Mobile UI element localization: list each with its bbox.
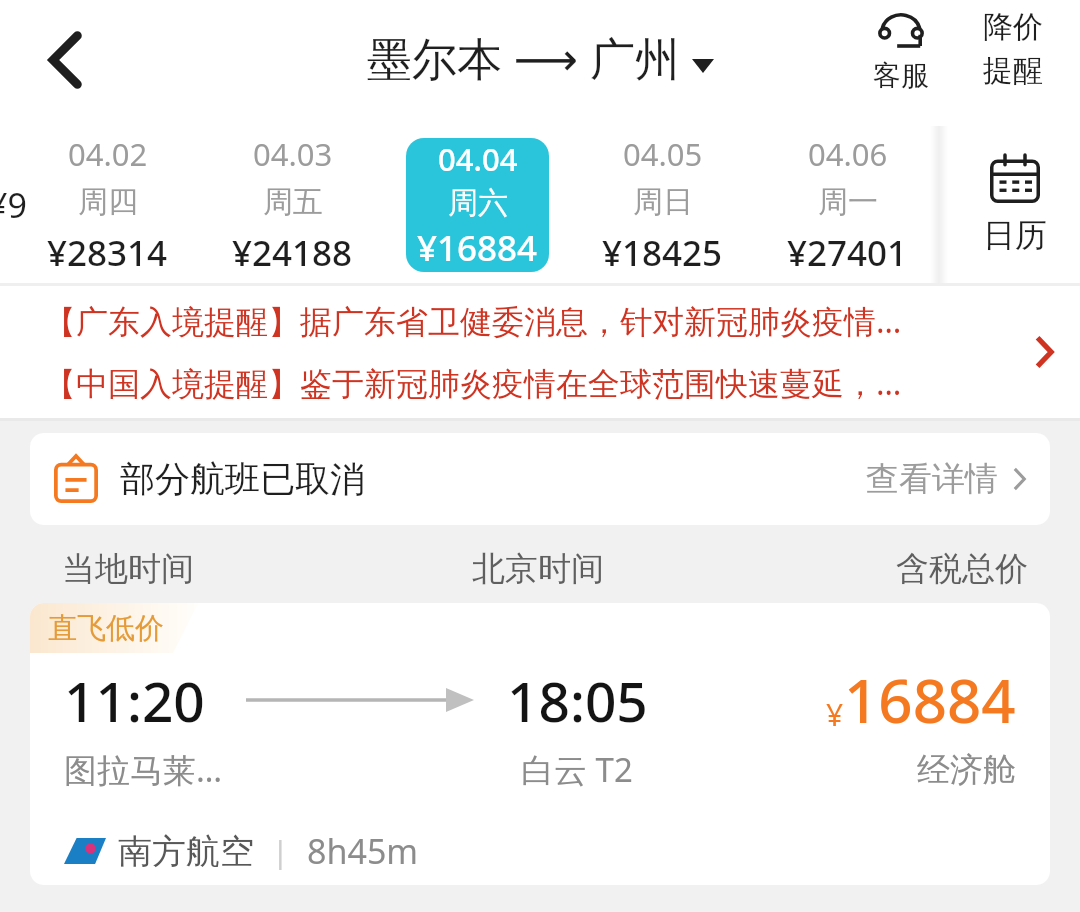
other: Calendar [990,155,1040,203]
staticText: 04.03 [253,133,333,175]
staticText: 04.06 [808,133,888,175]
staticText: | [272,831,289,872]
staticText: 图拉马莱… [64,747,223,792]
button[interactable]: 降价 [964,8,1062,90]
button[interactable]: 04.05 [570,126,755,283]
button[interactable]: 04.02 [14,126,200,283]
staticText: ¥28314 [47,229,168,277]
staticText: 周一 [818,183,878,221]
button[interactable]: 【广东入境提醒】据广东省卫健委消息，针对新冠肺炎疫情… [0,286,1080,418]
staticText: 提醒 [983,52,1043,90]
staticText: 北京时间 [472,548,604,590]
staticText: 查看详情 [866,458,998,500]
staticText: 当地时间 [62,548,194,590]
button[interactable]: 04.03 [200,126,385,283]
button[interactable]: Calendar [950,126,1080,283]
staticText: 周日 [633,183,693,221]
other: Customer service [877,14,925,54]
staticText: 部分航班已取消 [120,457,365,501]
staticText: 04.02 [68,133,148,175]
button[interactable]: 04.06 [755,126,940,283]
staticText: ¥ [826,694,844,735]
button[interactable]: 墨尔本 ⟶ 广州 [367,27,714,88]
staticText: 经济舱 [917,749,1016,791]
staticText: 04.04 [438,138,518,180]
staticText: 降价 [983,8,1043,46]
staticText: 白云 T2 [521,747,633,792]
staticText: ¥16884 [417,224,538,272]
staticText: 18:05 [507,663,648,738]
staticText: 周五 [263,183,323,221]
button[interactable]: Back [14,8,118,112]
staticText: 日历 [983,215,1047,255]
button[interactable]: Customer service [856,14,946,93]
staticText: 04.05 [623,133,703,175]
staticText: ¥18425 [602,229,723,277]
staticText: 【中国入境提醒】鉴于新冠肺炎疫情在全球范围快速蔓延，… [44,361,902,405]
staticText: 客服 [873,58,929,93]
staticText: 直飞低价 [48,610,164,647]
staticText: 周六 [448,184,508,222]
staticText: ¥27401 [787,229,908,277]
staticText: 南方航空 [118,830,254,873]
staticText: 8h45m [307,828,419,874]
staticText: 周四 [78,183,138,221]
staticText: 16884 [844,659,1016,741]
staticText: 墨尔本 ⟶ 广州 [367,27,680,88]
staticText: ¥9 [0,182,27,228]
button[interactable]: 04.04 [385,126,570,283]
staticText: 11:20 [64,663,205,738]
staticText: 【广东入境提醒】据广东省卫健委消息，针对新冠肺炎疫情… [44,299,902,343]
staticText: 含税总价 [896,548,1028,590]
button[interactable]: 直飞低价 [30,603,1050,885]
staticText: ¥24188 [232,229,353,277]
button[interactable]: 部分航班已取消 [30,433,1050,525]
